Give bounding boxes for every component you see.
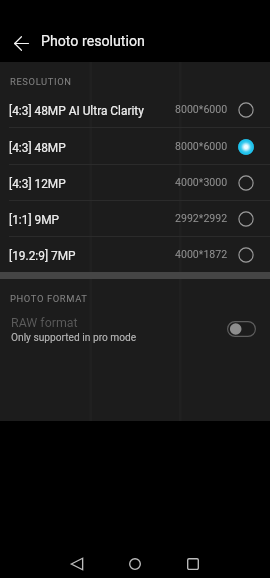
button[interactable]: Navigate up (4, 26, 38, 60)
staticText: RESOLUTION (10, 76, 72, 87)
button[interactable]: [19.2:9] 7MP (0, 237, 270, 272)
staticText: 4000*3000 (175, 176, 228, 188)
button[interactable]: [4:3] 48MP AI Ultra Clarity (0, 91, 270, 128)
staticText: [19.2:9] 7MP (9, 249, 76, 263)
button[interactable]: Back (63, 550, 91, 578)
button[interactable]: RAW format switch, off (227, 321, 256, 337)
staticText: RAW format (11, 315, 78, 330)
staticText: PHOTO FORMAT (10, 293, 88, 304)
staticText: 8000*6000 (175, 140, 228, 152)
staticText: [4:3] 48MP (9, 141, 66, 155)
button[interactable]: Recent apps (179, 550, 207, 578)
staticText: [1:1] 9MP (9, 213, 60, 227)
staticText: [4:3] 12MP (9, 177, 66, 191)
button[interactable]: Home (121, 550, 149, 578)
button[interactable]: [1:1] 9MP (0, 201, 270, 237)
button[interactable]: [4:3] 12MP (0, 165, 270, 201)
button[interactable]: RAW format (0, 310, 270, 356)
staticText: [4:3] 48MP AI Ultra Clarity (9, 104, 144, 118)
staticText: Only supported in pro mode (11, 332, 137, 344)
staticText: Photo resolution (41, 33, 145, 50)
button[interactable]: [4:3] 48MP (0, 128, 270, 165)
staticText: 4000*1872 (175, 248, 228, 260)
staticText: 2992*2992 (175, 212, 228, 224)
staticText: 8000*6000 (175, 103, 228, 115)
